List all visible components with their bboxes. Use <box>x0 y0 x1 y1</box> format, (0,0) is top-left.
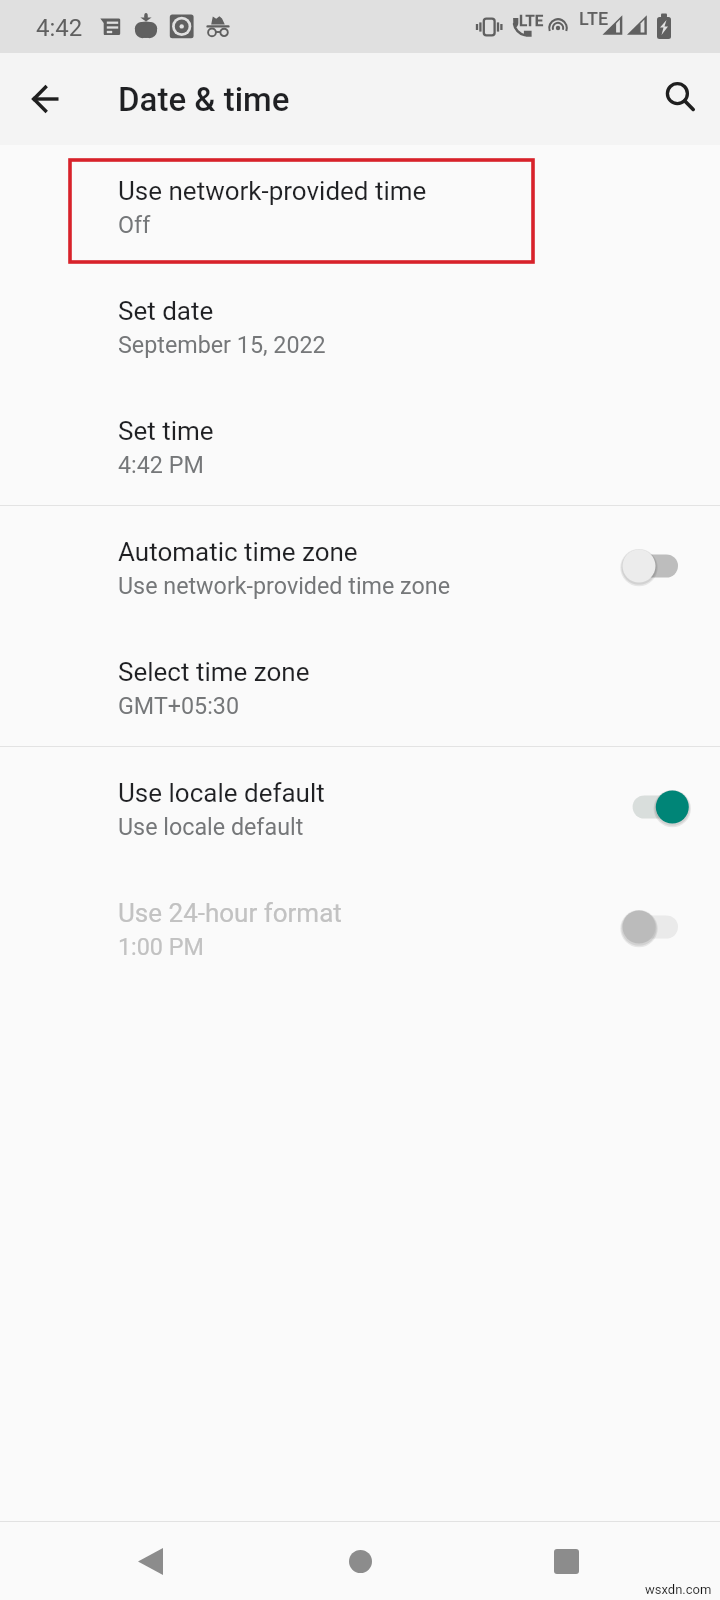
staticText: Date & time <box>118 80 290 119</box>
staticText: Select time zone <box>118 657 310 687</box>
staticText: LTE <box>579 8 609 29</box>
button[interactable]: Back <box>110 1522 190 1600</box>
staticText: LTE <box>519 12 544 30</box>
button[interactable]: Home <box>320 1522 400 1600</box>
button[interactable]: Set time <box>0 385 720 505</box>
staticText: Off <box>118 211 151 238</box>
staticText: Automatic time zone <box>118 537 358 567</box>
button[interactable]: Use network-provided time <box>0 145 720 265</box>
button[interactable]: Toggle <box>616 903 678 951</box>
staticText: wsxdn.com <box>645 1582 712 1597</box>
staticText: Use network-provided time zone <box>118 572 450 599</box>
staticText: Use network-provided time <box>118 176 427 206</box>
staticText: September 15, 2022 <box>118 331 326 358</box>
button[interactable]: Select time zone <box>0 626 720 746</box>
button[interactable]: Toggle <box>616 542 678 590</box>
staticText: Use locale default <box>118 813 304 840</box>
button[interactable]: Set date <box>0 265 720 385</box>
button[interactable]: Search <box>658 75 706 123</box>
staticText: Set time <box>118 416 214 446</box>
button[interactable]: Use 24-hour format <box>0 867 720 987</box>
button[interactable]: Back <box>22 75 70 123</box>
button[interactable]: Use locale default <box>0 747 720 867</box>
button[interactable]: Toggle <box>616 783 678 831</box>
button[interactable]: Automatic time zone <box>0 506 720 626</box>
staticText: Set date <box>118 296 214 326</box>
staticText: 4:42 PM <box>118 451 204 478</box>
button[interactable]: Recent apps <box>526 1522 606 1600</box>
staticText: Use locale default <box>118 778 325 808</box>
staticText: 4:42 <box>36 14 83 42</box>
staticText: Use 24-hour format <box>118 898 342 928</box>
staticText: 1:00 PM <box>118 933 204 960</box>
staticText: GMT+05:30 <box>118 692 240 719</box>
